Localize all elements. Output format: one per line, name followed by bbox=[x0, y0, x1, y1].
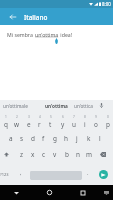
button[interactable]: Navigate up bbox=[5, 9, 21, 25]
staticText: 6 bbox=[62, 115, 64, 119]
staticText: ?123 bbox=[0, 172, 9, 177]
staticText: j bbox=[76, 134, 78, 143]
staticText: a bbox=[9, 134, 13, 143]
button[interactable]: d bbox=[27, 130, 38, 146]
button[interactable]: x bbox=[27, 146, 38, 162]
staticText: 9 bbox=[95, 115, 97, 119]
staticText: idea! bbox=[59, 31, 73, 38]
staticText: n bbox=[76, 150, 80, 159]
button[interactable]: n bbox=[72, 146, 83, 162]
staticText: , bbox=[20, 169, 22, 177]
staticText: Italiano bbox=[24, 13, 48, 22]
staticText: 2 bbox=[16, 115, 18, 119]
button[interactable]: 2 bbox=[11, 114, 22, 130]
staticText: c bbox=[42, 150, 46, 159]
button[interactable]: 6 bbox=[57, 114, 68, 130]
staticText: r bbox=[38, 120, 41, 129]
button[interactable]: un'ottica bbox=[71, 99, 95, 112]
button[interactable]: 4 bbox=[34, 114, 45, 130]
button[interactable]: m bbox=[83, 146, 94, 162]
staticText: 4 bbox=[39, 115, 41, 119]
staticText: x bbox=[31, 150, 35, 159]
staticText: g bbox=[53, 134, 57, 143]
button[interactable]: , bbox=[16, 164, 26, 182]
staticText: d bbox=[31, 134, 35, 143]
staticText: s bbox=[20, 134, 24, 143]
button[interactable]: . bbox=[83, 164, 93, 182]
button[interactable]: f bbox=[38, 130, 49, 146]
staticText: 0 bbox=[107, 115, 109, 119]
staticText: b bbox=[65, 150, 69, 159]
staticText: 5 bbox=[50, 115, 52, 119]
staticText: un'ottimale bbox=[3, 103, 28, 109]
button[interactable]: k bbox=[83, 130, 94, 146]
staticText: 8:00 bbox=[102, 1, 111, 7]
staticText: i bbox=[84, 120, 86, 129]
button[interactable]: Voice input bbox=[96, 99, 106, 112]
button[interactable]: z bbox=[16, 146, 27, 162]
button[interactable]: 5 bbox=[45, 114, 56, 130]
button[interactable]: b bbox=[61, 146, 72, 162]
button[interactable]: un'ottima bbox=[42, 99, 70, 112]
staticText: un'ottica bbox=[74, 103, 93, 109]
button[interactable]: s bbox=[16, 130, 27, 146]
button[interactable]: Send bbox=[97, 165, 110, 183]
button[interactable]: Recent apps bbox=[66, 185, 99, 200]
button[interactable]: Home bbox=[33, 185, 66, 200]
button[interactable]: 9 bbox=[90, 114, 101, 130]
staticText: 3 bbox=[28, 115, 30, 119]
staticText: p bbox=[106, 120, 110, 129]
button[interactable]: Back bbox=[0, 185, 33, 200]
staticText: q bbox=[4, 120, 8, 129]
staticText: 8 bbox=[84, 115, 86, 119]
staticText: t bbox=[49, 120, 52, 129]
button[interactable]: Backspace bbox=[95, 146, 110, 162]
button[interactable]: Hide keyboard bbox=[99, 185, 113, 200]
button[interactable]: j bbox=[71, 130, 82, 146]
button[interactable]: Shift bbox=[0, 146, 14, 162]
staticText: o bbox=[94, 120, 98, 129]
button[interactable]: a bbox=[5, 130, 16, 146]
staticText: y bbox=[61, 120, 65, 129]
staticText: m bbox=[86, 150, 92, 159]
staticText: f bbox=[42, 134, 45, 143]
staticText: k bbox=[87, 134, 91, 143]
staticText: 7 bbox=[73, 115, 75, 119]
button[interactable]: 8 bbox=[79, 114, 90, 130]
button[interactable]: ?123 bbox=[0, 165, 11, 183]
button[interactable]: g bbox=[49, 130, 60, 146]
button[interactable]: un'ottimale bbox=[1, 99, 29, 112]
button[interactable]: v bbox=[49, 146, 60, 162]
staticText: u bbox=[72, 120, 76, 129]
button[interactable]: 7 bbox=[68, 114, 79, 130]
staticText: z bbox=[20, 150, 24, 159]
staticText: . bbox=[87, 169, 89, 177]
button[interactable]: 3 bbox=[23, 114, 34, 130]
button[interactable]: l bbox=[94, 130, 105, 146]
staticText: w bbox=[14, 120, 20, 129]
button[interactable]: h bbox=[60, 130, 71, 146]
button[interactable]: 1 bbox=[0, 114, 11, 130]
staticText: e bbox=[27, 120, 31, 129]
staticText: h bbox=[64, 134, 68, 143]
button[interactable]: c bbox=[38, 146, 49, 162]
staticText: un'ottima bbox=[35, 31, 59, 38]
staticText: un'ottima bbox=[45, 103, 68, 109]
staticText: l bbox=[99, 134, 101, 143]
button[interactable]: 0 bbox=[102, 114, 113, 130]
staticText: 1 bbox=[5, 115, 7, 119]
staticText: v bbox=[53, 150, 57, 159]
staticText: Mi sembra bbox=[7, 31, 35, 38]
